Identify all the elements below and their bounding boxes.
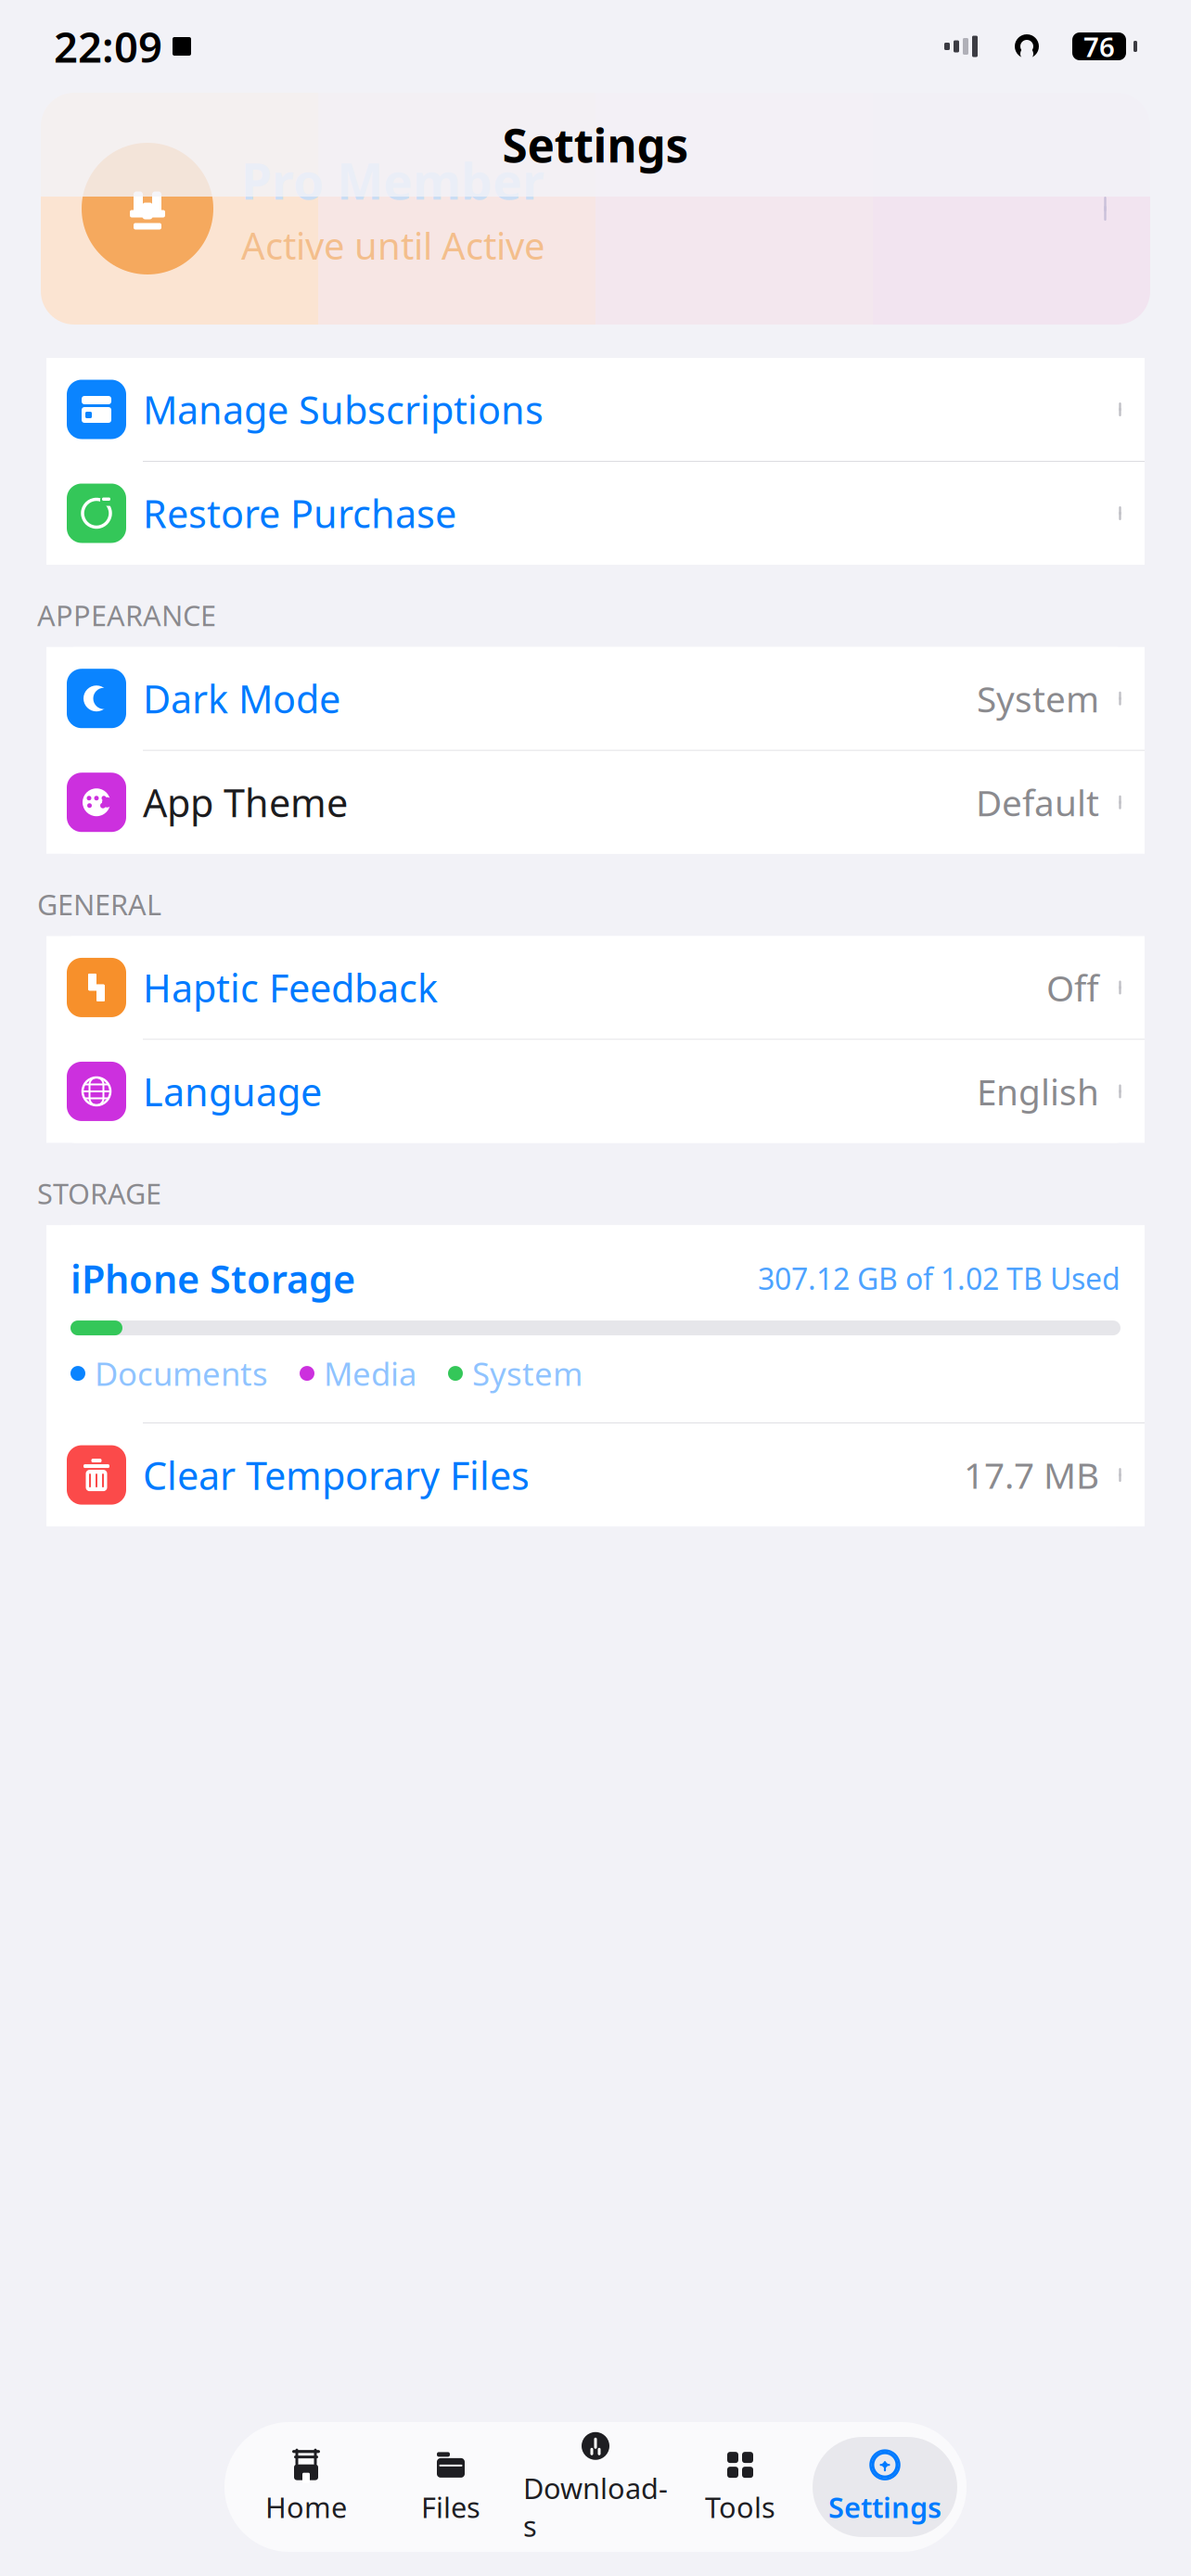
button[interactable]: Settings <box>813 2437 957 2537</box>
staticText: 307.12 GB of 1.02 TB Used <box>758 1259 1121 1298</box>
button[interactable]: Downloads <box>523 2437 668 2537</box>
staticText: English <box>977 1068 1099 1115</box>
staticText: Pro Member <box>241 147 544 213</box>
button[interactable]: Tools <box>668 2437 813 2537</box>
staticText: App Theme <box>143 777 348 828</box>
staticText: 22:09 <box>54 18 162 74</box>
staticText: Media <box>324 1352 416 1395</box>
staticText: Manage Subscriptions <box>143 384 544 435</box>
button[interactable]: Files <box>378 2437 523 2537</box>
button[interactable]: Haptic Feedback <box>46 936 1145 1039</box>
button[interactable]: Dark Mode <box>46 647 1145 750</box>
staticText: Restore Purchase <box>143 488 456 539</box>
staticText: System <box>472 1352 583 1395</box>
staticText: Downloads <box>523 2469 668 2545</box>
button[interactable]: Restore Purchase <box>46 462 1145 565</box>
button[interactable]: iPhone Storage <box>46 1225 1145 1423</box>
staticText: Documents <box>95 1352 268 1395</box>
staticText: Clear Temporary Files <box>143 1450 530 1500</box>
staticText: System <box>977 675 1099 722</box>
button[interactable]: Clear Temporary Files <box>46 1423 1145 1526</box>
staticText: Files <box>421 2488 480 2526</box>
button[interactable]: Manage Subscriptions <box>46 358 1145 461</box>
button[interactable]: App Theme <box>46 751 1145 854</box>
button[interactable]: Home <box>234 2437 378 2537</box>
staticText: 17.7 MB <box>964 1451 1099 1499</box>
staticText: Active until Active <box>241 221 545 270</box>
staticText: iPhone Storage <box>70 1253 355 1304</box>
staticText: Settings <box>828 2488 941 2526</box>
button[interactable]: Language <box>46 1040 1145 1143</box>
staticText: Tools <box>705 2488 775 2526</box>
staticText: Home <box>265 2488 347 2526</box>
staticText: Dark Mode <box>143 673 340 724</box>
staticText: Off <box>1046 964 1099 1011</box>
staticText: APPEARANCE <box>37 596 216 634</box>
staticText: Haptic Feedback <box>143 962 438 1013</box>
staticText: Settings <box>502 114 689 175</box>
staticText: Default <box>976 779 1099 826</box>
staticText: 76 <box>1083 28 1115 64</box>
staticText: Language <box>143 1066 322 1117</box>
staticText: STORAGE <box>37 1174 161 1212</box>
staticText: GENERAL <box>37 885 161 923</box>
